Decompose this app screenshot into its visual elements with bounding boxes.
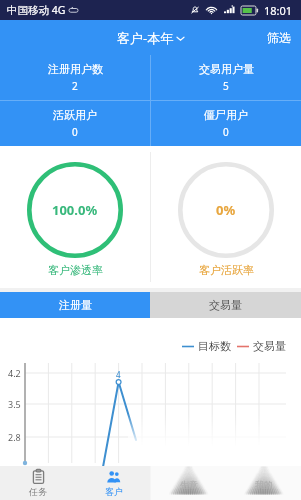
staticText: 2.8 xyxy=(8,431,21,443)
button[interactable]: 注册量 xyxy=(0,292,150,318)
staticText: 0 xyxy=(72,125,78,139)
button[interactable]: 生意 xyxy=(151,466,226,500)
staticText: 客户渗透率 xyxy=(48,263,103,277)
button[interactable]: 交易量 xyxy=(150,292,301,318)
staticText: 筛选 xyxy=(267,30,291,45)
button[interactable]: 任务 xyxy=(0,466,76,500)
staticText: 客户活跃率 xyxy=(199,263,254,277)
staticText: 4 xyxy=(116,369,121,380)
staticText: 目标数 xyxy=(198,339,231,353)
staticText: 客户 xyxy=(105,486,123,497)
staticText: 2 xyxy=(72,79,78,93)
staticText: 4.2 xyxy=(8,367,21,379)
other: 任务 xyxy=(31,469,46,484)
button[interactable]: 交易用户量 xyxy=(151,55,301,100)
staticText: 3.5 xyxy=(8,398,21,410)
staticText: 18:01 xyxy=(264,3,293,18)
staticText: 中国移动 4G xyxy=(7,3,66,17)
button[interactable]: 筛选 xyxy=(257,20,301,55)
staticText: 僵尸用户 xyxy=(204,108,248,122)
staticText: 客户-本年 xyxy=(117,29,174,47)
button[interactable]: 客户-本年 xyxy=(111,25,190,51)
staticText: 交易量 xyxy=(209,298,242,312)
staticText: 注册量 xyxy=(59,298,92,312)
staticText: 100.0% xyxy=(52,201,98,219)
staticText: 5 xyxy=(223,79,229,93)
staticText: 活跃用户 xyxy=(53,108,97,122)
staticText: 交易量 xyxy=(253,339,286,353)
staticText: 0 xyxy=(223,125,229,139)
button[interactable]: 客户 xyxy=(76,466,151,500)
button[interactable]: 我的 xyxy=(226,466,301,500)
other: 客户 xyxy=(106,469,121,484)
button[interactable]: 注册用户数 xyxy=(0,55,150,100)
staticText: 我的 xyxy=(255,479,273,490)
button[interactable]: 活跃用户 xyxy=(0,101,150,146)
staticText: 注册用户数 xyxy=(48,62,103,76)
button[interactable]: 僵尸用户 xyxy=(151,101,301,146)
staticText: 0% xyxy=(216,201,236,219)
staticText: 任务 xyxy=(29,486,47,497)
staticText: 交易用户量 xyxy=(199,62,254,76)
staticText: 生意 xyxy=(180,479,198,490)
